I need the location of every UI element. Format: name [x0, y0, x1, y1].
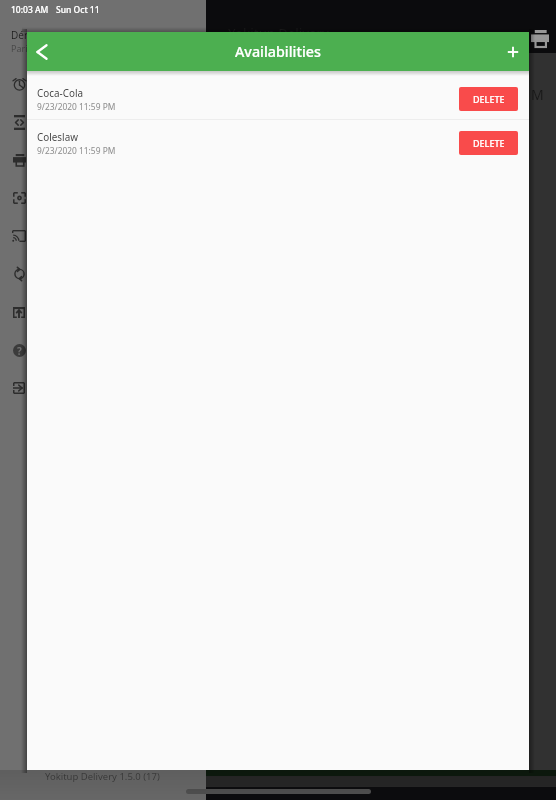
button[interactable]: Export — [5, 298, 33, 326]
button[interactable]: Help — [5, 336, 33, 364]
button[interactable]: Sync — [5, 260, 33, 288]
staticText: 9/23/2020 11:59 PM — [37, 145, 116, 156]
staticText: Yokitup Delivery 1.5.0 (17) — [45, 770, 160, 783]
staticText: 10:03 AM — [11, 4, 49, 16]
staticText: Dér — [11, 28, 29, 42]
button[interactable]: Coleslaw — [27, 120, 529, 164]
staticText: Pari — [11, 42, 28, 54]
button[interactable]: Print — [5, 146, 33, 174]
staticText: DELETE — [473, 93, 505, 105]
button[interactable]: Coca-Cola — [27, 76, 529, 120]
staticText: 9/23/2020 11:59 PM — [37, 101, 116, 112]
button[interactable]: DELETE — [459, 87, 518, 111]
button[interactable]: Add — [498, 37, 528, 67]
staticText: Coca-Cola — [37, 86, 84, 99]
staticText: Yokitup Delivery — [228, 24, 329, 42]
button[interactable]: Developer — [5, 108, 33, 136]
staticText: Coleslaw — [37, 130, 78, 143]
staticText: DELETE — [473, 137, 505, 149]
staticText: Sun Oct 11 — [56, 4, 100, 16]
button[interactable]: Log out — [5, 374, 33, 402]
staticText: ? — [17, 344, 22, 357]
staticText: Availabilities — [235, 42, 321, 61]
staticText: M — [531, 85, 544, 104]
button[interactable]: Print — [531, 30, 550, 49]
button[interactable]: Alarm — [5, 70, 33, 98]
button[interactable]: Scan — [5, 184, 33, 212]
button[interactable]: DELETE — [459, 131, 518, 155]
button[interactable]: Cast — [5, 222, 33, 250]
button[interactable]: Back — [29, 39, 55, 65]
